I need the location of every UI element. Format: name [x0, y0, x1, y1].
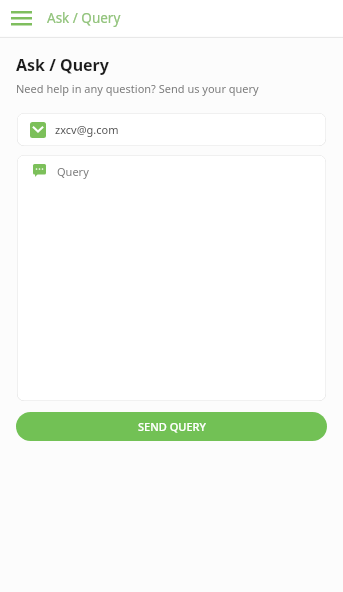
button[interactable]: SEND QUERY — [16, 412, 327, 441]
staticText: Ask / Query — [47, 9, 121, 27]
staticText: Need help in any question? Send us your … — [16, 81, 259, 96]
staticText: zxcv@g.com — [55, 122, 119, 137]
staticText: SEND QUERY — [138, 419, 206, 434]
button[interactable]: zxcv@g.com — [17, 113, 326, 146]
staticText: Ask / Query — [16, 54, 109, 76]
button[interactable]: Query — [17, 155, 326, 401]
button[interactable]: Open navigation menu — [6, 3, 36, 33]
staticText: Query — [57, 164, 89, 179]
